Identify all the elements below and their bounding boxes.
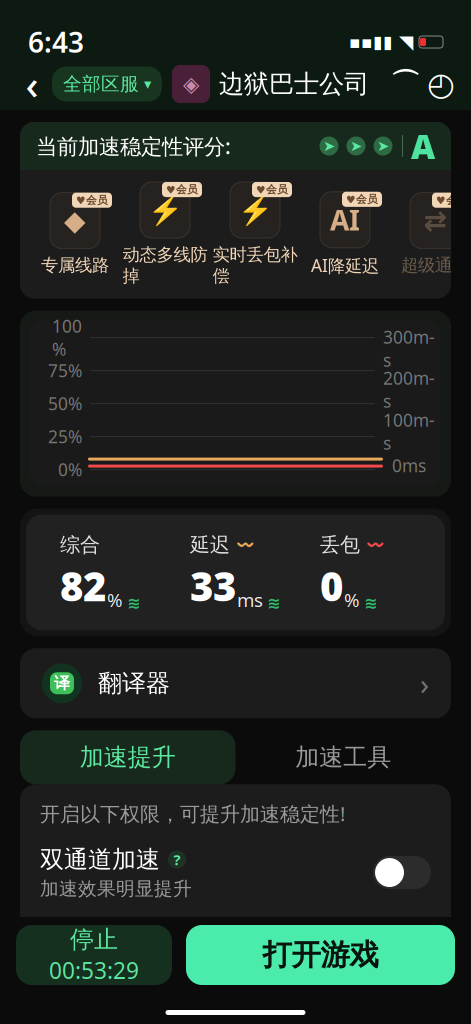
button[interactable]: 加速提升 — [20, 730, 235, 784]
staticText: ≋ — [127, 594, 140, 612]
staticText: % — [344, 587, 360, 612]
staticText: 翻译器 — [98, 668, 170, 698]
staticText: 专属线路 — [41, 255, 109, 276]
staticText: 200ms — [383, 367, 435, 413]
staticText: ⌒ — [390, 66, 419, 102]
staticText: % — [107, 587, 123, 612]
staticText: 100% — [52, 315, 82, 361]
staticText: 当前加速稳定性评分: — [36, 132, 231, 160]
staticText: ➤ — [323, 138, 335, 154]
staticText: 25% — [48, 425, 82, 448]
staticText: 停止 — [70, 925, 118, 954]
staticText: ◥ — [399, 31, 413, 53]
staticText: 全部区服 — [63, 72, 139, 95]
staticText: ♥会员 — [166, 183, 198, 196]
staticText: 0 — [320, 559, 343, 612]
staticText: 加速工具 — [295, 742, 391, 772]
staticText: 延迟 — [190, 533, 230, 557]
staticText: 00:53:29 — [49, 955, 139, 985]
staticText: 超级通道 — [401, 255, 469, 276]
button[interactable]: 停止 — [16, 925, 172, 985]
staticText: 0ms — [392, 454, 426, 477]
staticText: 100ms — [383, 409, 435, 455]
staticText: 6:43 — [28, 23, 84, 61]
staticText: 加速效果明显提升 — [40, 877, 192, 900]
staticText: ♥会员 — [436, 194, 468, 207]
staticText: 0% — [58, 458, 82, 481]
button[interactable]: Refresh — [423, 66, 459, 102]
staticText: 打开游戏 — [262, 937, 378, 973]
staticText: 动态多线防掉 — [122, 244, 207, 287]
button[interactable]: 加速工具 — [235, 730, 451, 784]
staticText: ➤ — [350, 138, 362, 154]
staticText: ≋ — [364, 594, 377, 612]
staticText: › — [420, 664, 429, 703]
staticText: ➤ — [377, 138, 389, 154]
staticText: ◴ — [427, 66, 455, 102]
button[interactable]: ⇄ — [390, 193, 471, 276]
staticText: ♥会员 — [256, 183, 288, 196]
staticText: ⇄ — [423, 205, 446, 237]
button[interactable]: ◆ — [30, 193, 120, 276]
staticText: 实时丢包补偿 — [212, 244, 297, 287]
button[interactable]: 打开游戏 — [186, 925, 455, 985]
staticText: 〰 — [235, 536, 255, 554]
staticText: 82 — [60, 559, 106, 612]
staticText: A — [411, 124, 435, 168]
staticText: ⚡ — [147, 194, 182, 226]
staticText: 游戏下载教程 — [40, 922, 184, 952]
button[interactable]: ◈ — [162, 65, 369, 103]
button[interactable]: 全部区服 — [52, 66, 162, 101]
button[interactable]: Support — [387, 66, 423, 102]
staticText: 译 — [54, 673, 70, 693]
button[interactable]: ⚡ — [210, 182, 300, 287]
button[interactable]: 译 — [20, 648, 451, 718]
staticText: 双通道加速 — [40, 845, 160, 874]
staticText: ◈ — [183, 72, 199, 96]
staticText: AI降延迟 — [311, 254, 379, 277]
staticText: ▪▪▮▮ — [349, 32, 393, 52]
button[interactable]: 查看 — [371, 922, 431, 952]
staticText: 300ms — [383, 326, 435, 372]
staticText: ◆ — [64, 205, 86, 237]
staticText: 丢包 — [320, 533, 360, 557]
staticText: AI — [330, 201, 360, 238]
staticText: 综合 — [60, 533, 100, 557]
button[interactable]: Back — [12, 64, 52, 104]
staticText: 边狱巴士公司 — [219, 68, 369, 99]
button[interactable]: Help — [168, 851, 186, 869]
staticText: ♥会员 — [76, 194, 108, 207]
staticText: 加速提升 — [80, 742, 176, 772]
staticText: ms — [237, 587, 263, 612]
staticText: 开启以下权限，可提升加速稳定性! — [40, 800, 345, 827]
staticText: 75% — [48, 359, 82, 382]
staticText: 33 — [190, 559, 236, 612]
staticText: ▾ — [144, 76, 151, 92]
staticText: ≋ — [267, 594, 280, 612]
staticText: ? — [173, 850, 180, 869]
button[interactable]: ⚡ — [120, 182, 210, 287]
button[interactable]: Dual channel toggle — [373, 856, 431, 889]
staticText: 50% — [48, 392, 82, 415]
staticText: 〰 — [365, 536, 385, 554]
button[interactable]: AI — [300, 192, 390, 277]
staticText: ‹ — [25, 57, 38, 110]
staticText: ♥会员 — [346, 193, 378, 206]
staticText: ⚡ — [237, 194, 272, 226]
